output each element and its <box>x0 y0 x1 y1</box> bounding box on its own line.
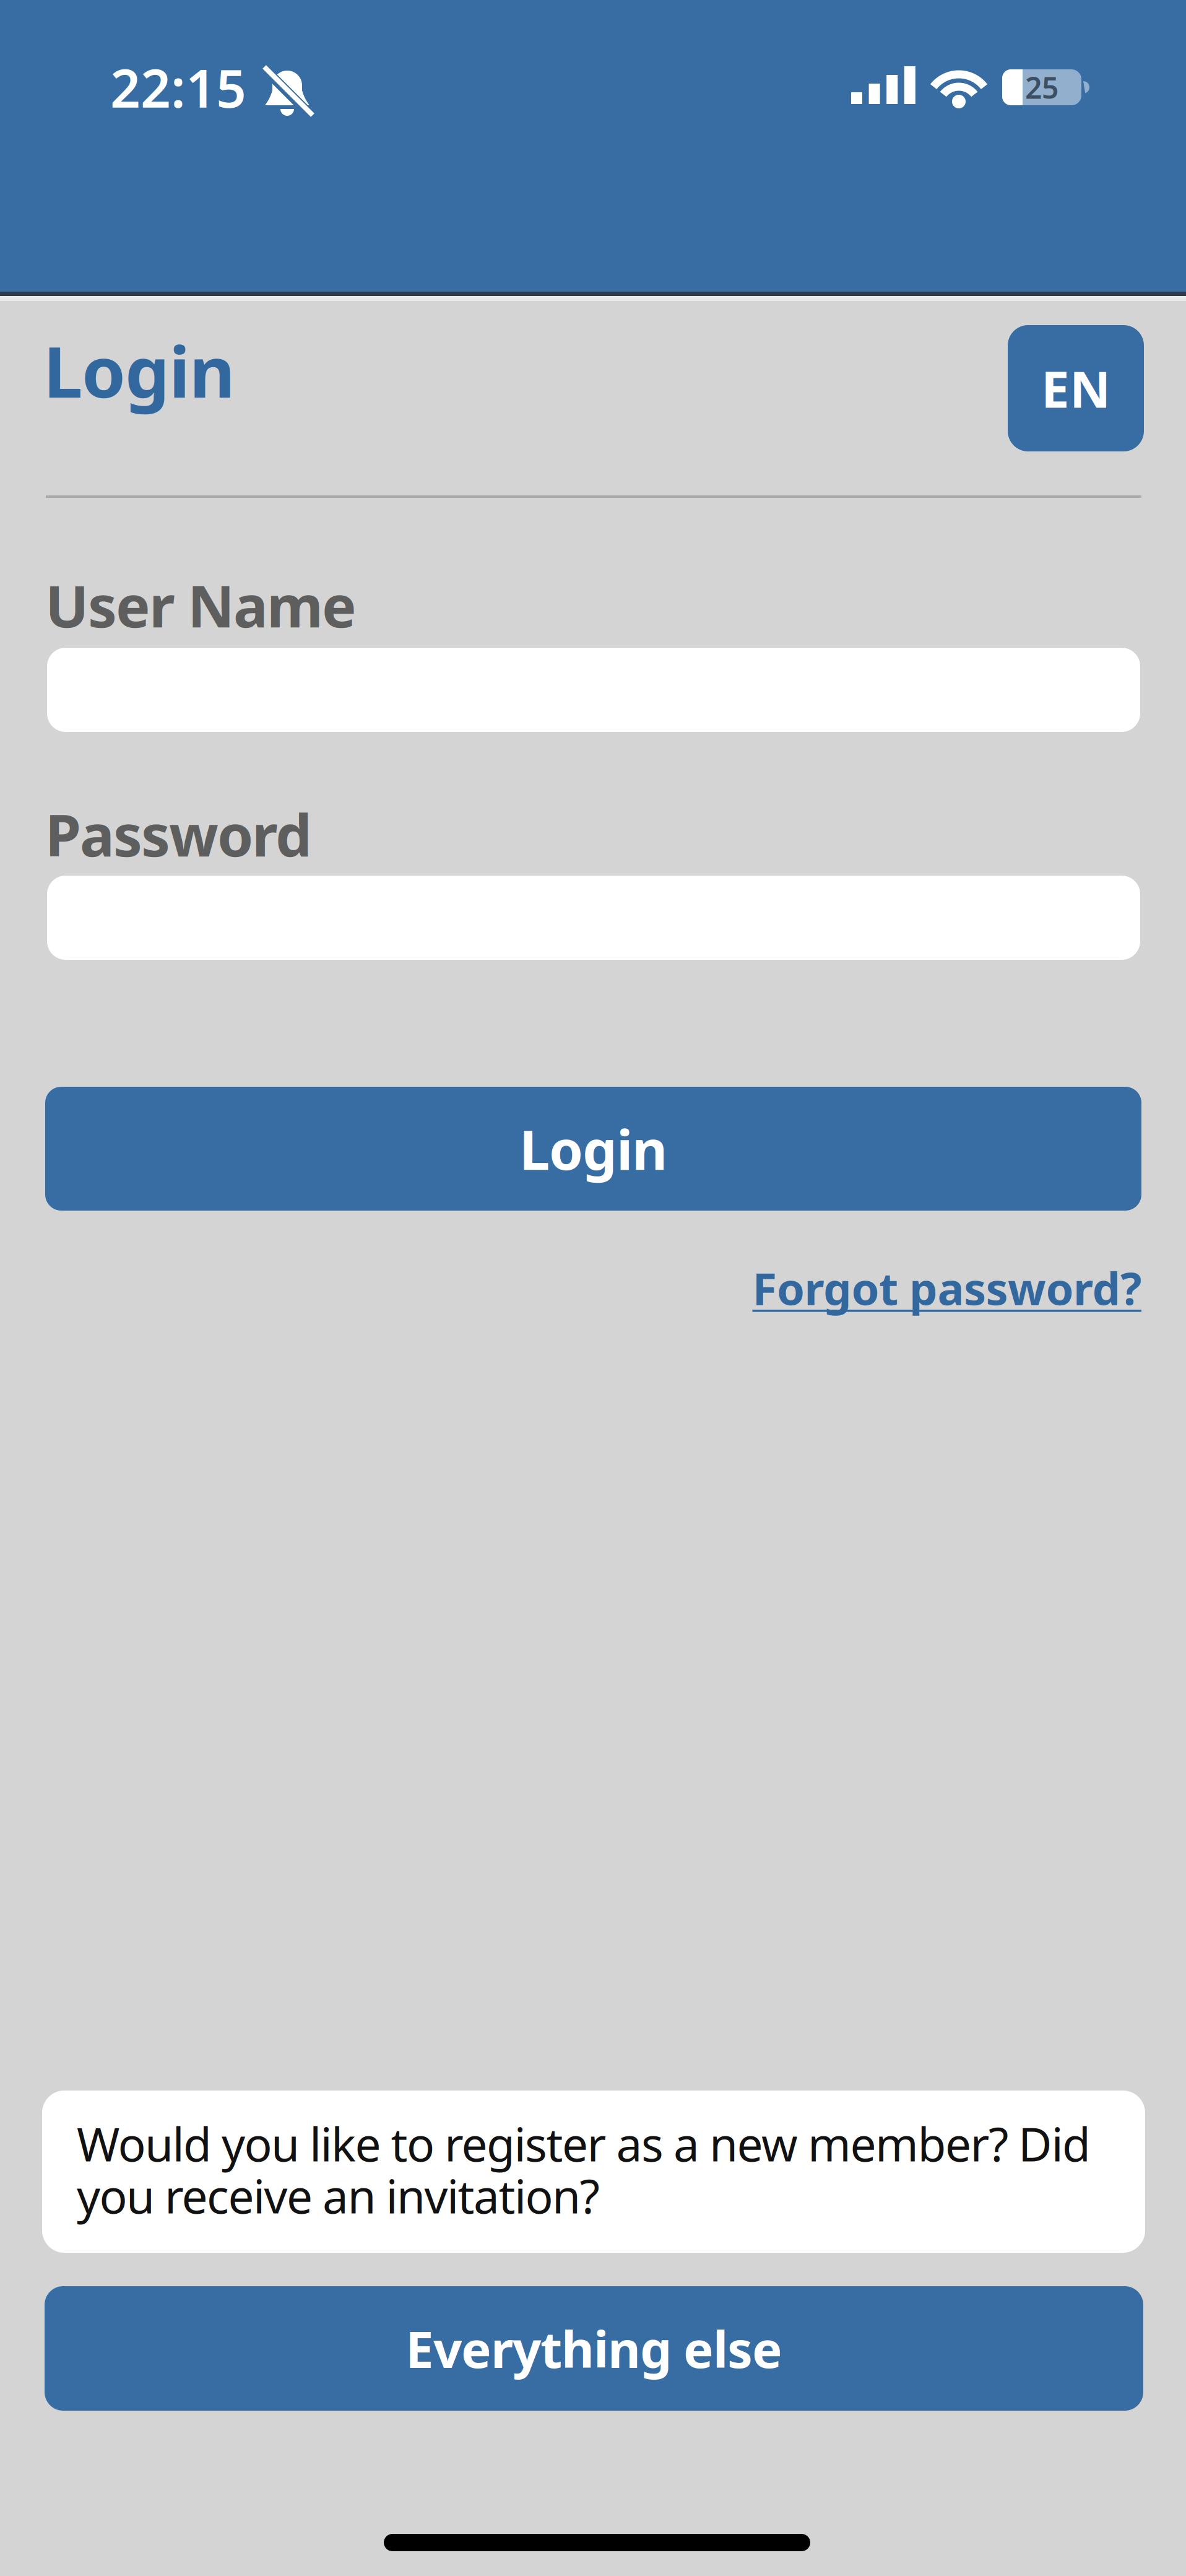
staticText: 22:15 <box>110 52 246 122</box>
staticText: User Name <box>45 567 357 643</box>
staticText: Login <box>43 324 235 417</box>
staticText: 25 <box>1025 68 1058 107</box>
button[interactable]: Login <box>45 1087 1141 1211</box>
staticText: you receive an invitation? <box>77 2165 599 2226</box>
button[interactable]: EN <box>1008 325 1144 451</box>
staticText: Password <box>45 796 312 872</box>
button[interactable]: Forgot password? <box>46 1258 1141 1317</box>
staticText: Everything else <box>405 2315 782 2382</box>
staticText: EN <box>1041 355 1110 422</box>
staticText: Would you like to register as a new memb… <box>77 2113 1091 2174</box>
staticText: Forgot password? <box>752 1258 1141 1317</box>
button[interactable]: Everything else <box>45 2286 1143 2411</box>
staticText: Login <box>519 1113 667 1185</box>
